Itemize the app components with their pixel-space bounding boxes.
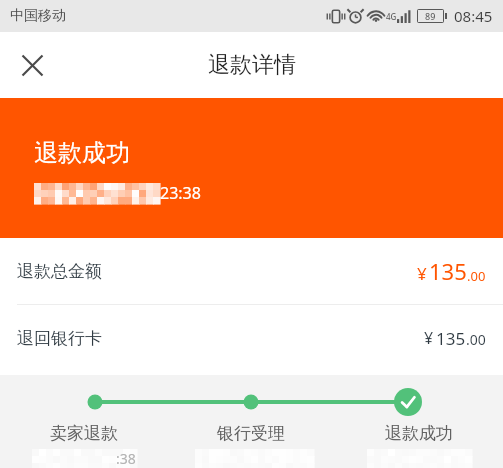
staticText: 退回银行卡 xyxy=(17,328,102,349)
staticText: :38 xyxy=(116,449,136,468)
staticText: 退款总金额 xyxy=(17,261,102,282)
staticText: ¥ xyxy=(424,327,434,349)
staticText: 退款详情 xyxy=(208,51,296,79)
staticText: 4G xyxy=(386,11,397,22)
button[interactable]: Close xyxy=(8,41,56,89)
staticText: ¥ xyxy=(417,262,427,285)
staticText: 卖家退款 xyxy=(50,423,118,444)
staticText: 中国移动 xyxy=(10,7,66,25)
staticText: .00 xyxy=(466,330,486,349)
staticText: .00 xyxy=(467,267,486,285)
staticText: 89 xyxy=(425,10,436,22)
staticText: 23:38 xyxy=(160,182,201,204)
staticText: 银行受理 xyxy=(217,423,285,444)
staticText: 退款成功 xyxy=(34,138,130,168)
staticText: 08:45 xyxy=(454,6,493,26)
staticText: 135 xyxy=(436,327,466,350)
button[interactable]: 退款总金额 xyxy=(0,238,503,304)
staticText: 135 xyxy=(429,256,467,286)
button[interactable]: 退回银行卡 xyxy=(0,305,503,371)
staticText: 退款成功 xyxy=(385,423,453,444)
